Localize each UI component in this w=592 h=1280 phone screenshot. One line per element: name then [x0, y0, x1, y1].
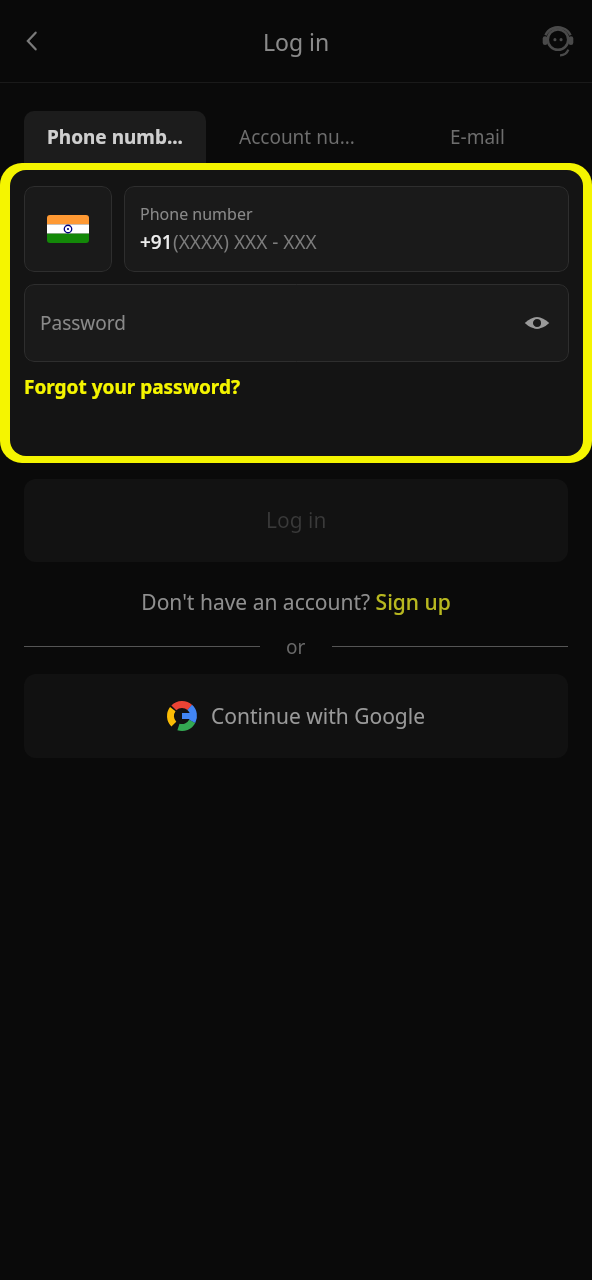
- staticText: +91: [140, 229, 173, 255]
- staticText: (XXXX) XXX - XXX: [173, 229, 317, 255]
- staticText: Account nu...: [239, 124, 355, 150]
- button[interactable]: Forgot your password?: [24, 372, 240, 402]
- button[interactable]: Back: [4, 13, 60, 69]
- button[interactable]: Continue with Google: [24, 674, 568, 758]
- staticText: Continue with Google: [211, 702, 426, 731]
- staticText: Log in: [263, 26, 330, 57]
- staticText: Forgot your password?: [24, 374, 240, 400]
- staticText: E-mail: [450, 124, 505, 150]
- button[interactable]: Show password: [515, 301, 559, 345]
- button[interactable]: [24, 186, 112, 272]
- button[interactable]: Don't have an account? Sign up: [137, 586, 455, 619]
- button[interactable]: Password: [24, 284, 569, 362]
- staticText: Password: [40, 310, 126, 336]
- button[interactable]: Phone numb...: [24, 111, 206, 163]
- staticText: Don't have an account? Sign up: [141, 588, 451, 617]
- button[interactable]: Customer support: [530, 13, 586, 69]
- staticText: Log in: [266, 506, 327, 535]
- staticText: Phone number: [140, 203, 253, 225]
- button[interactable]: Phone number: [124, 186, 569, 272]
- staticText: or: [286, 634, 306, 658]
- button[interactable]: Account nu...: [206, 111, 387, 163]
- button[interactable]: E-mail: [387, 111, 568, 163]
- staticText: Phone numb...: [47, 124, 183, 150]
